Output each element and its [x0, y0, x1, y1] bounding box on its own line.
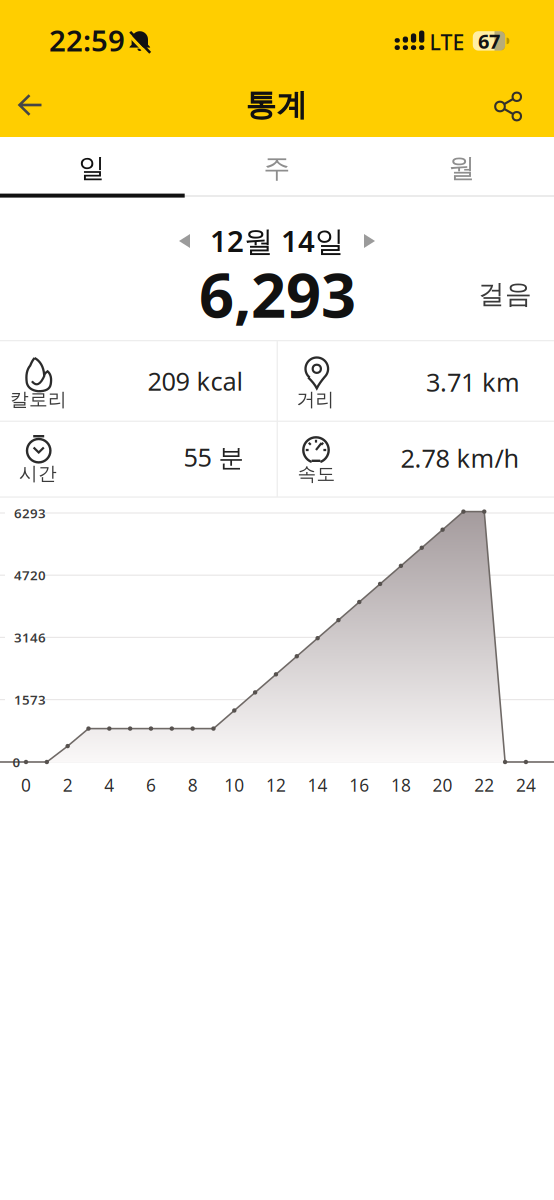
- button[interactable]: 월: [370, 140, 554, 196]
- staticText: 3146: [14, 628, 46, 646]
- staticText: 4720: [14, 566, 46, 584]
- staticText: 12월 14일: [210, 221, 344, 260]
- staticText: 2.78 km/h: [400, 441, 519, 475]
- staticText: 4: [104, 773, 114, 796]
- staticText: 8: [188, 773, 198, 796]
- staticText: 55 분: [183, 440, 243, 474]
- button[interactable]: Back: [8, 83, 52, 127]
- staticText: 14: [308, 773, 328, 796]
- staticText: 통계: [245, 86, 307, 124]
- staticText: 12: [266, 773, 286, 796]
- button[interactable]: Share: [488, 84, 532, 128]
- staticText: 16: [349, 773, 369, 796]
- staticText: 일: [78, 152, 105, 184]
- staticText: 67: [478, 28, 500, 54]
- staticText: 칼로리: [10, 388, 67, 411]
- staticText: 월: [448, 152, 475, 184]
- staticText: 시간: [19, 462, 57, 485]
- staticText: 2: [63, 773, 73, 796]
- staticText: 속도: [297, 462, 335, 485]
- staticText: 1573: [14, 691, 46, 708]
- button[interactable]: Next day: [352, 227, 386, 255]
- staticText: 6: [146, 773, 156, 796]
- staticText: 거리: [296, 388, 334, 411]
- staticText: 209 kcal: [147, 364, 243, 398]
- staticText: 6293: [14, 504, 46, 522]
- staticText: 22: [474, 773, 494, 796]
- staticText: 0: [21, 773, 31, 796]
- staticText: 3.71 km: [426, 365, 520, 399]
- staticText: 10: [224, 773, 244, 796]
- staticText: 걸음: [478, 278, 532, 310]
- staticText: 18: [391, 773, 411, 796]
- staticText: 22:59: [49, 20, 125, 59]
- button[interactable]: 주: [185, 140, 369, 196]
- staticText: 6,293: [199, 253, 356, 335]
- staticText: 주: [263, 152, 290, 184]
- button[interactable]: 일: [0, 140, 184, 196]
- staticText: 20: [433, 773, 453, 796]
- staticText: 24: [516, 773, 536, 796]
- staticText: 0: [12, 753, 20, 771]
- button[interactable]: Previous day: [168, 227, 202, 255]
- staticText: LTE: [429, 28, 464, 56]
